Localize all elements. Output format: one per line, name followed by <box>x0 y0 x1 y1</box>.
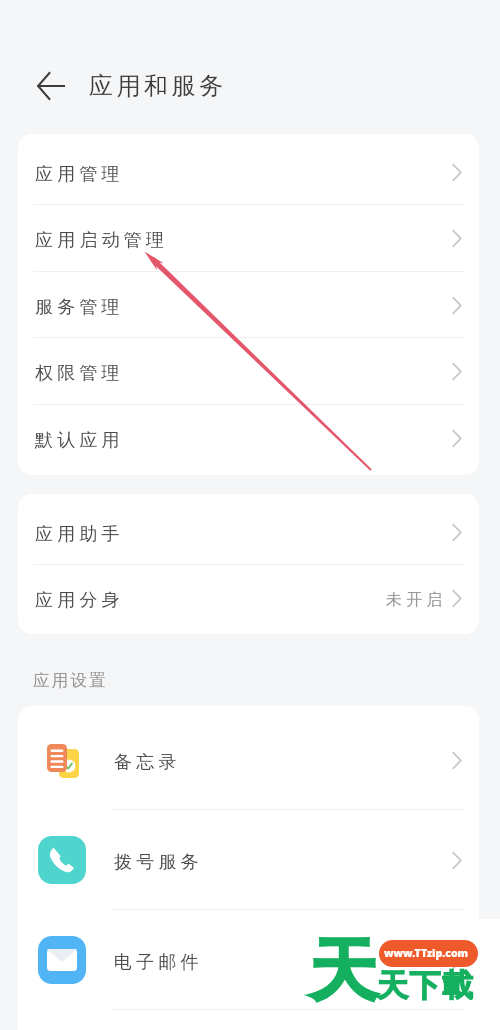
button[interactable]: 应用助手 <box>18 499 479 565</box>
staticText: www.TTzip.com <box>384 946 469 960</box>
button[interactable]: 应用管理 <box>18 139 479 205</box>
staticText: 电子邮件 <box>114 951 203 974</box>
staticText: 应用助手 <box>35 523 124 546</box>
staticText: 默认应用 <box>35 429 124 452</box>
button[interactable]: 应用启动管理 <box>18 205 479 272</box>
button[interactable]: 应用分身 <box>18 565 479 631</box>
staticText: 天 <box>309 929 377 1015</box>
button[interactable]: Back <box>30 66 70 106</box>
staticText: 应用分身 <box>35 589 124 612</box>
button[interactable]: 默认应用 <box>18 405 479 471</box>
staticText: 拨号服务 <box>114 851 203 874</box>
staticText: 应用和服务 <box>87 71 225 101</box>
staticText: 权限管理 <box>35 362 124 385</box>
staticText: 天下載 <box>377 966 475 1005</box>
staticText: 应用设置 <box>33 670 108 691</box>
staticText: 服务管理 <box>35 296 124 319</box>
staticText: 备忘录 <box>114 751 181 774</box>
button[interactable]: 权限管理 <box>18 338 479 405</box>
button[interactable]: 备忘录 <box>18 710 479 810</box>
staticText: 未开启 <box>386 590 447 610</box>
staticText: 应用管理 <box>35 163 124 186</box>
button[interactable]: 电子邮件 <box>18 910 479 1010</box>
staticText: 应用启动管理 <box>35 229 169 252</box>
button[interactable]: 拨号服务 <box>18 810 479 910</box>
button[interactable]: 服务管理 <box>18 272 479 338</box>
